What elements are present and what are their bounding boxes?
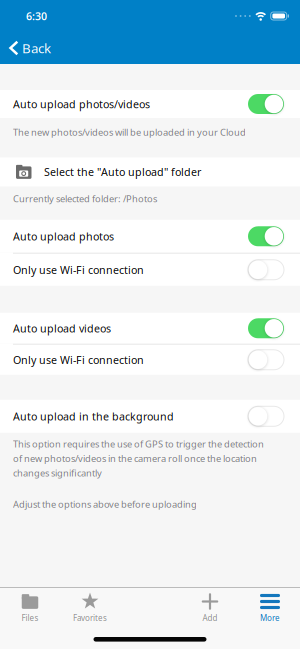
button[interactable]: Auto upload in the background xyxy=(248,406,284,426)
button[interactable]: Only use Wi-Fi connection xyxy=(248,260,284,280)
staticText: Auto upload photos/videos xyxy=(13,97,150,111)
button[interactable]: More xyxy=(240,593,300,623)
staticText: Auto upload photos xyxy=(13,229,114,243)
staticText: Adjust the options above before uploadin… xyxy=(13,498,197,510)
button[interactable]: Auto upload photos xyxy=(248,226,284,246)
staticText: Currently selected folder: /Photos xyxy=(13,192,157,205)
staticText: This option requires the use of GPS to t… xyxy=(13,438,264,450)
staticText: Add xyxy=(202,612,217,623)
staticText: of new photos/videos in the camera roll … xyxy=(13,452,257,465)
button[interactable]: Favorites xyxy=(60,593,120,623)
staticText: The new photos/videos will be uploaded i… xyxy=(13,126,246,138)
staticText: Only use Wi-Fi connection xyxy=(13,263,144,277)
staticText: 6:30 xyxy=(26,9,47,23)
staticText: changes significantly xyxy=(13,467,102,479)
button[interactable]: Back xyxy=(0,39,51,57)
button[interactable]: Auto upload photos/videos xyxy=(248,94,284,114)
staticText: Auto upload videos xyxy=(13,321,111,335)
staticText: Favorites xyxy=(73,612,107,623)
staticText: Auto upload in the background xyxy=(13,409,174,423)
button[interactable]: Only use Wi-Fi connection xyxy=(248,350,284,370)
button[interactable]: Auto upload videos xyxy=(248,318,284,338)
staticText: More xyxy=(260,612,280,623)
button[interactable]: Files xyxy=(0,593,60,623)
staticText: Files xyxy=(21,612,38,623)
button[interactable]: Add xyxy=(180,593,240,623)
staticText: Select the "Auto upload" folder xyxy=(44,165,201,179)
button[interactable]: Select the "Auto upload" folder xyxy=(0,157,300,186)
staticText: Back xyxy=(22,39,51,57)
staticText: Only use Wi-Fi connection xyxy=(13,353,144,367)
